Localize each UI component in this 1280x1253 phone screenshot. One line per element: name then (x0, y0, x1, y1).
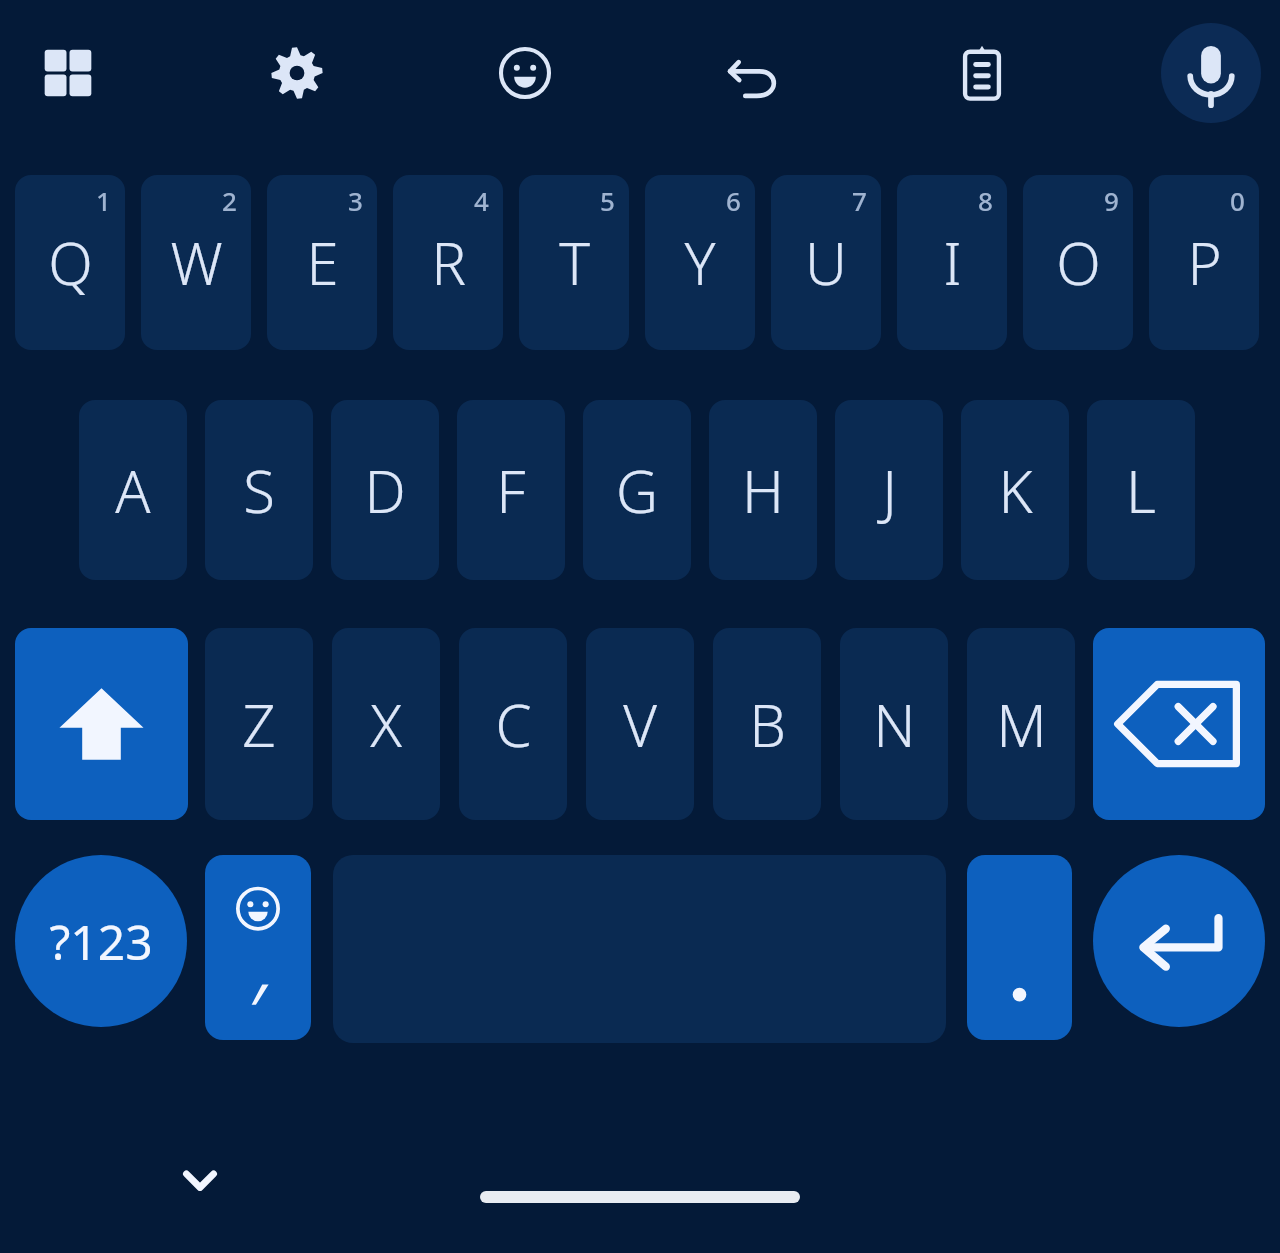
staticText: T (559, 223, 590, 302)
staticText: N (873, 685, 916, 764)
staticText: 0 (1230, 183, 1245, 218)
staticText: U (805, 223, 847, 302)
button[interactable]: P (1149, 175, 1259, 350)
button[interactable]: Y (645, 175, 755, 350)
button[interactable]: Period (967, 855, 1072, 1040)
staticText: J (882, 451, 897, 530)
staticText: 3 (348, 183, 363, 218)
button[interactable]: A (79, 400, 187, 580)
button[interactable]: N (840, 628, 948, 820)
button[interactable]: Clipboard (938, 29, 1026, 117)
button[interactable]: X (332, 628, 440, 820)
button[interactable]: U (771, 175, 881, 350)
button[interactable]: K (961, 400, 1069, 580)
staticText: D (364, 451, 406, 530)
button[interactable]: Shift (15, 628, 188, 820)
button[interactable]: J (835, 400, 943, 580)
staticText: 8 (978, 183, 993, 218)
staticText: I (943, 223, 962, 302)
button[interactable]: Hide keyboard (160, 1140, 240, 1220)
staticText: 7 (852, 183, 867, 218)
button[interactable]: Emoji and comma (205, 855, 311, 1040)
button[interactable]: G (583, 400, 691, 580)
button[interactable]: Keyboard modes (24, 29, 112, 117)
button[interactable]: Enter (1093, 855, 1265, 1027)
staticText: X (370, 685, 402, 764)
staticText: 6 (726, 183, 741, 218)
button[interactable]: E (267, 175, 377, 350)
button[interactable]: Emoji (481, 29, 569, 117)
button[interactable]: B (713, 628, 821, 820)
button[interactable]: Backspace (1093, 628, 1265, 820)
button[interactable]: Settings (253, 29, 341, 117)
staticText: A (115, 451, 151, 530)
button[interactable]: I (897, 175, 1007, 350)
staticText: K (998, 451, 1033, 530)
staticText: Q (48, 223, 93, 302)
staticText: C (495, 685, 532, 764)
staticText: V (623, 685, 657, 764)
button[interactable]: W (141, 175, 251, 350)
button[interactable]: F (457, 400, 565, 580)
button[interactable]: C (459, 628, 567, 820)
button[interactable]: Z (205, 628, 313, 820)
staticText: Z (242, 685, 276, 764)
staticText: ?123 (49, 909, 153, 974)
staticText: E (306, 223, 339, 302)
button[interactable]: Voice input (1161, 23, 1261, 123)
button[interactable]: L (1087, 400, 1195, 580)
button[interactable]: Q (15, 175, 125, 350)
staticText: B (749, 685, 786, 764)
button[interactable]: M (967, 628, 1075, 820)
staticText: 1 (96, 183, 111, 218)
button[interactable]: S (205, 400, 313, 580)
staticText: 4 (474, 183, 489, 218)
staticText: F (496, 451, 526, 530)
staticText: R (431, 223, 466, 302)
button[interactable]: H (709, 400, 817, 580)
staticText: L (1126, 451, 1156, 530)
staticText: 2 (222, 183, 237, 218)
staticText: O (1056, 223, 1101, 302)
staticText: 9 (1104, 183, 1119, 218)
button[interactable]: D (331, 400, 439, 580)
staticText: M (996, 685, 1047, 764)
button[interactable]: Undo (710, 29, 798, 117)
button[interactable]: R (393, 175, 503, 350)
staticText: H (742, 451, 784, 530)
staticText: W (170, 223, 223, 302)
button[interactable]: V (586, 628, 694, 820)
button[interactable]: O (1023, 175, 1133, 350)
staticText: P (1187, 223, 1222, 302)
staticText: S (243, 451, 275, 530)
staticText: G (616, 451, 658, 530)
button[interactable]: ?123 (15, 855, 187, 1027)
staticText: 5 (600, 183, 615, 218)
button[interactable]: T (519, 175, 629, 350)
staticText: Y (684, 223, 716, 302)
